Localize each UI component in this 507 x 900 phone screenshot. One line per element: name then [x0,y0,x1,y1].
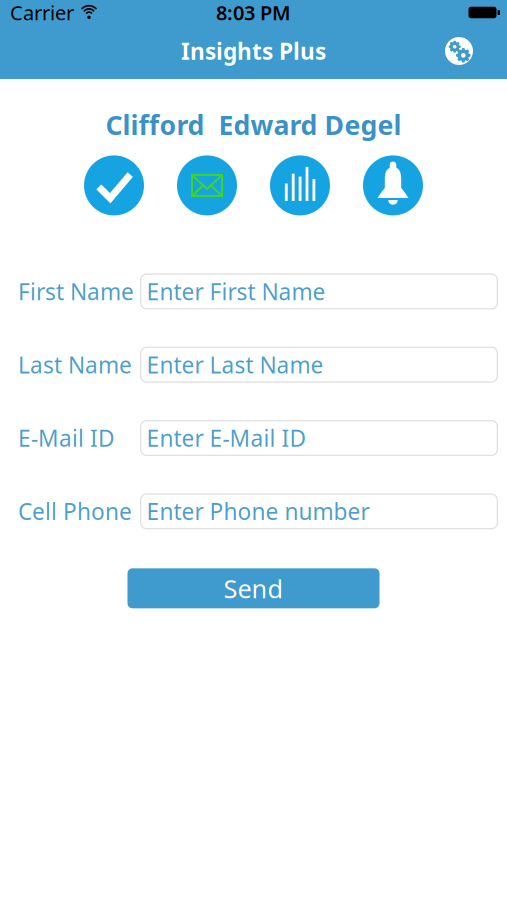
staticText: Enter E-Mail ID [146,423,306,453]
staticText: Enter Phone number [146,496,369,526]
staticText: Send [223,571,283,605]
button[interactable]: Send [127,568,379,608]
staticText: E-Mail ID [18,423,115,453]
button[interactable]: Mail [177,155,237,215]
button[interactable]: Insights [270,155,330,215]
staticText: Cell Phone [18,496,132,526]
button[interactable]: Enter Phone number [140,493,498,529]
button[interactable]: Tasks [84,155,144,215]
staticText: Carrier [10,0,74,26]
button[interactable]: Enter Last Name [140,347,498,383]
staticText: 8:03 PM [216,0,291,26]
staticText: Enter First Name [146,276,325,306]
button[interactable]: Settings [445,37,473,65]
staticText: Clifford Edward Degel [105,107,401,142]
staticText: Last Name [18,350,132,380]
button[interactable]: Notifications [363,155,423,215]
button[interactable]: Enter First Name [140,273,498,309]
staticText: Insights Plus [181,36,326,66]
staticText: Enter Last Name [146,350,323,380]
button[interactable]: Enter E-Mail ID [140,420,498,456]
staticText: First Name [18,276,134,306]
